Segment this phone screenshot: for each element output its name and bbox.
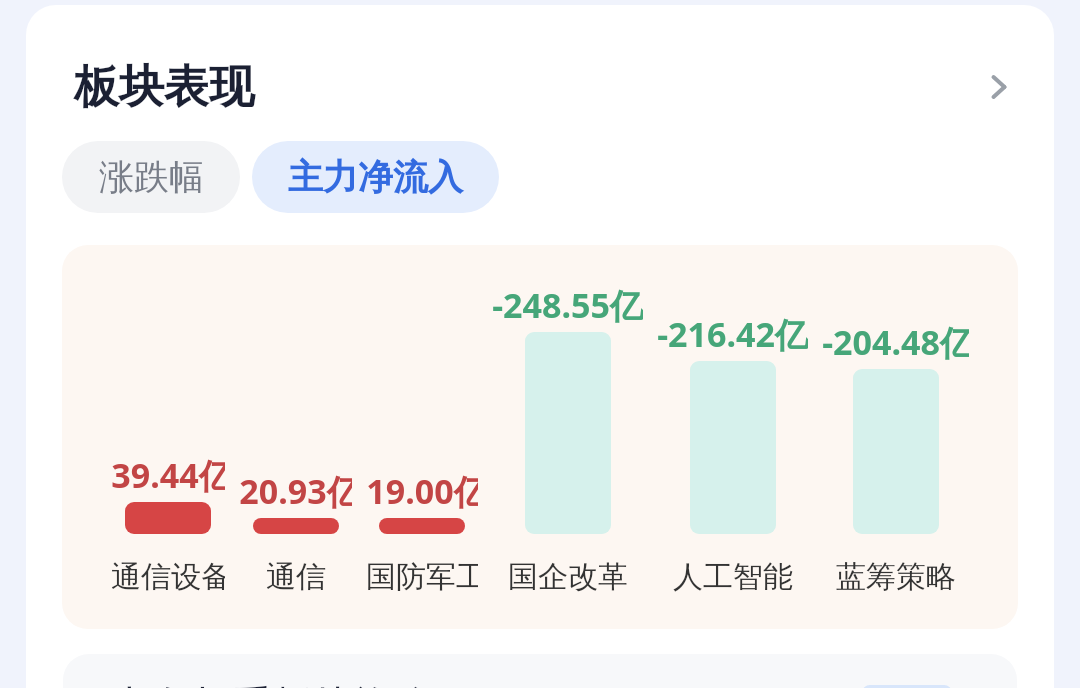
staticText: 大盘权重板块资金 bbox=[109, 681, 437, 688]
button[interactable]: 大盘权重板块资金 bbox=[63, 654, 1017, 688]
staticText: 39.44亿 bbox=[111, 452, 225, 498]
staticText: -248.55亿 bbox=[492, 282, 643, 328]
staticText: 国防军工 bbox=[366, 558, 478, 596]
staticText: 主力净流入 bbox=[288, 155, 463, 199]
button[interactable]: -204.48亿 bbox=[822, 245, 969, 629]
button[interactable]: 39.44亿 bbox=[111, 245, 225, 629]
button[interactable]: 20.93亿 bbox=[239, 245, 352, 629]
staticText: 20.93亿 bbox=[239, 468, 352, 514]
staticText: 国企改革 bbox=[508, 558, 628, 596]
staticText: -204.48亿 bbox=[822, 319, 969, 365]
staticText: -216.42亿 bbox=[657, 311, 808, 357]
other: 查看更多 bbox=[971, 59, 1027, 115]
button[interactable]: 主力净流入 bbox=[252, 141, 499, 213]
staticText: 蓝筹策略 bbox=[836, 558, 956, 596]
button[interactable]: 板块表现 bbox=[26, 5, 1054, 169]
staticText: 板块表现 bbox=[74, 59, 254, 116]
staticText: 19.00亿 bbox=[366, 468, 478, 514]
staticText: 通信 bbox=[266, 558, 326, 596]
button[interactable]: 涨跌幅 bbox=[62, 141, 240, 213]
button[interactable]: -248.55亿 bbox=[492, 245, 643, 629]
staticText: 人工智能 bbox=[673, 558, 793, 596]
button[interactable]: 19.00亿 bbox=[366, 245, 478, 629]
button[interactable]: -216.42亿 bbox=[657, 245, 808, 629]
staticText: 通信设备 bbox=[111, 558, 225, 596]
staticText: 涨跌幅 bbox=[99, 155, 204, 199]
